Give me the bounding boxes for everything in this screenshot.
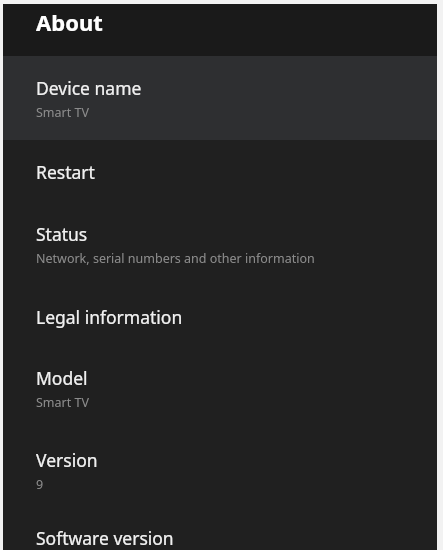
staticText: Device name [36,76,142,100]
staticText: Restart [36,160,95,184]
button[interactable]: Version [3,427,437,508]
button[interactable]: Device name [3,56,437,140]
staticText: Version [36,448,98,472]
staticText: 9 [36,476,44,493]
button[interactable]: Legal information [3,284,437,345]
button[interactable]: Software version [3,508,437,548]
staticText: Software version [36,526,174,550]
staticText: Status [36,222,88,246]
button[interactable]: Restart [3,140,437,201]
staticText: Legal information [36,305,183,329]
button[interactable]: Model [3,345,437,427]
staticText: Model [36,366,88,390]
button[interactable]: Status [3,201,437,284]
staticText: Network, serial numbers and other inform… [36,250,315,267]
staticText: About [36,7,103,37]
staticText: Smart TV [36,104,89,121]
staticText: Smart TV [36,394,89,411]
